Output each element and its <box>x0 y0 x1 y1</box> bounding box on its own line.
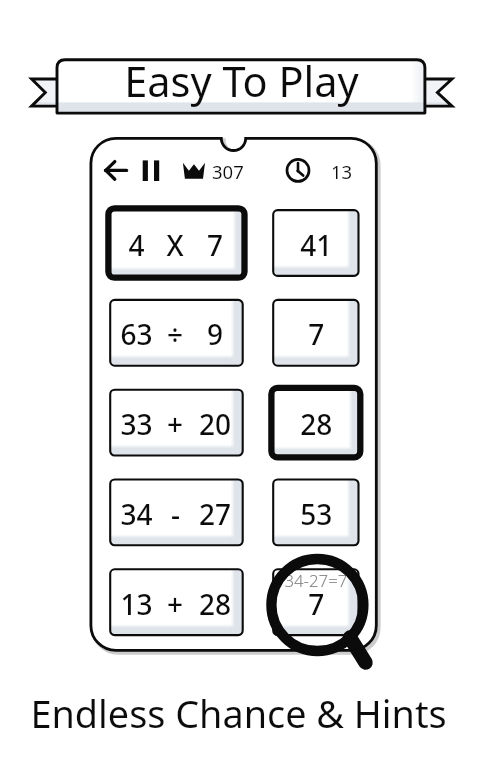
button[interactable] <box>0 0 480 768</box>
